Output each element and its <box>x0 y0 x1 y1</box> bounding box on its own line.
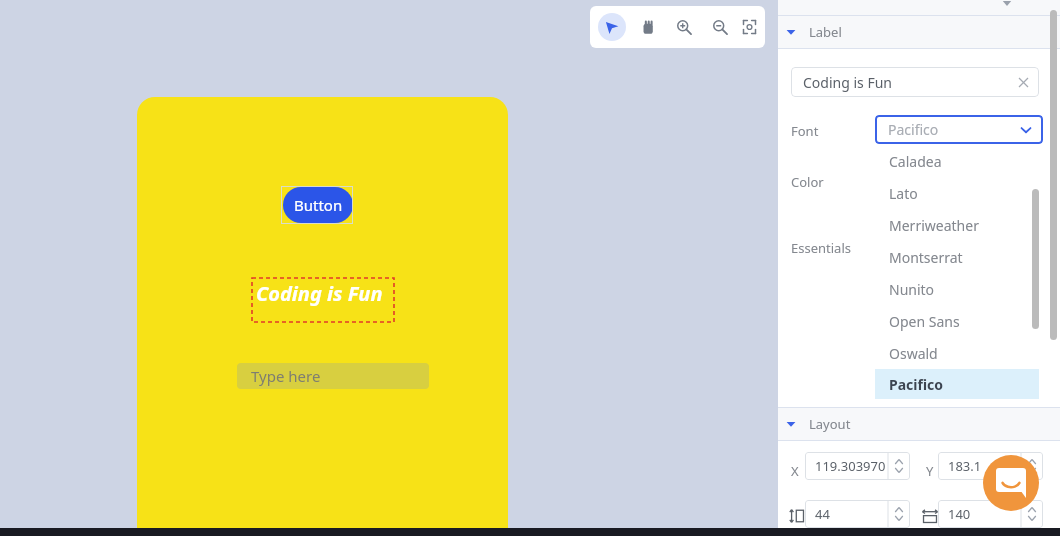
staticText: Font <box>791 122 819 140</box>
button[interactable]: Merriweather <box>875 209 1039 241</box>
button[interactable]: Label <box>778 16 1060 48</box>
staticText: Coding is Fun <box>256 280 383 307</box>
button[interactable]: Type here <box>237 363 429 389</box>
staticText: Color <box>791 173 824 191</box>
button[interactable]: Pan <box>634 13 662 41</box>
staticText: Open Sans <box>889 312 960 331</box>
button[interactable]: 44 <box>805 500 910 528</box>
staticText: Coding is Fun <box>803 73 892 92</box>
staticText: X <box>791 462 799 480</box>
button[interactable]: 140 <box>938 500 1043 528</box>
staticText: Button <box>294 195 343 215</box>
button[interactable]: Zoom in <box>670 13 698 41</box>
button[interactable]: 183.1 <box>938 452 1043 480</box>
button[interactable]: Decrease <box>894 465 904 475</box>
button[interactable]: Open Sans <box>875 305 1039 337</box>
button[interactable]: Fit to screen <box>742 13 757 41</box>
staticText: Type here <box>251 366 321 386</box>
button[interactable]: Open chat <box>983 455 1039 511</box>
staticText: 140 <box>948 505 971 523</box>
staticText: 44 <box>815 505 830 523</box>
button[interactable]: Coding is Fun <box>791 67 1039 97</box>
button[interactable]: Lato <box>875 177 1039 209</box>
button[interactable]: Increase <box>894 457 904 467</box>
staticText: Lato <box>889 184 918 203</box>
button[interactable]: Increase <box>1027 505 1037 515</box>
button[interactable]: Decrease <box>1027 465 1037 475</box>
button[interactable]: Decrease <box>894 513 904 523</box>
button[interactable]: Increase <box>1027 457 1037 467</box>
button[interactable]: 119.303970 <box>805 452 910 480</box>
staticText: Montserrat <box>889 248 963 267</box>
button[interactable]: Pacifico <box>875 369 1039 399</box>
button[interactable]: Increase <box>894 505 904 515</box>
other: Height <box>788 507 806 525</box>
staticText: Merriweather <box>889 216 979 235</box>
other: Width <box>921 507 939 525</box>
staticText: Oswald <box>889 344 938 363</box>
staticText: Pacifico <box>888 120 939 139</box>
button[interactable]: Select <box>598 13 626 41</box>
staticText: 183.1 <box>948 457 982 475</box>
staticText: Layout <box>809 415 851 433</box>
staticText: Essentials <box>791 239 851 257</box>
staticText: Label <box>809 23 842 41</box>
staticText: Caladea <box>889 152 942 171</box>
staticText: 119.303970 <box>815 457 886 475</box>
button[interactable]: Montserrat <box>875 241 1039 273</box>
staticText: Y <box>926 462 934 480</box>
button[interactable]: Layout <box>778 408 1060 440</box>
button[interactable]: Oswald <box>875 337 1039 369</box>
button[interactable]: Clear <box>1015 74 1031 90</box>
staticText: Nunito <box>889 280 935 299</box>
button[interactable]: Coding is Fun <box>252 278 394 322</box>
button[interactable]: Zoom out <box>706 13 734 41</box>
button[interactable]: Decrease <box>1027 513 1037 523</box>
button[interactable]: Caladea <box>875 145 1039 177</box>
staticText: Pacifico <box>889 375 944 394</box>
button[interactable]: Button <box>281 186 353 224</box>
button[interactable]: Nunito <box>875 273 1039 305</box>
button[interactable]: Pacifico <box>875 115 1043 144</box>
